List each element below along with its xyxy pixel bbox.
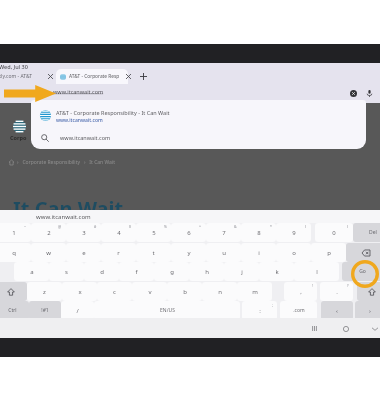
staticText: o: [292, 249, 296, 257]
button[interactable]: t: [136, 243, 171, 262]
staticText: f: [135, 268, 138, 276]
staticText: :: [259, 307, 261, 315]
button[interactable]: Back: [368, 323, 380, 334]
staticText: a: [30, 268, 34, 276]
staticText: m: [252, 288, 258, 296]
button[interactable]: :: [242, 301, 277, 320]
staticText: ;: [272, 302, 273, 307]
button[interactable]: 7: [206, 223, 241, 242]
button[interactable]: New tab: [136, 69, 150, 84]
button[interactable]: Home: [338, 323, 354, 334]
button[interactable]: .com: [280, 301, 317, 320]
button[interactable]: f: [119, 262, 154, 281]
button[interactable]: 3: [66, 223, 101, 242]
staticText: It Can Wait: [13, 195, 124, 222]
staticText: t: [152, 249, 155, 257]
staticText: 8: [257, 229, 261, 237]
button[interactable]: 9: [276, 223, 311, 242]
button[interactable]: s: [49, 262, 84, 281]
button[interactable]: a: [14, 262, 49, 281]
button[interactable]: 2: [31, 223, 66, 242]
button[interactable]: l: [294, 262, 339, 281]
staticText: /: [76, 307, 79, 315]
staticText: !: [312, 283, 313, 288]
button[interactable]: Close tab: [122, 69, 134, 84]
button[interactable]: Voice search: [363, 87, 376, 100]
button[interactable]: www.itcanwait.com: [31, 128, 366, 149]
button[interactable]: 1: [0, 223, 31, 242]
button[interactable]: 6: [171, 223, 206, 242]
staticText: Wed, Jul 30: [0, 63, 28, 70]
staticText: › Corporate Responsibility › It Can Wait: [17, 159, 115, 166]
button[interactable]: u: [206, 243, 241, 262]
button[interactable]: 0: [315, 223, 353, 242]
button[interactable]: g: [154, 262, 189, 281]
button[interactable]: Ctrl: [0, 301, 29, 320]
staticText: itly.com - AT&T: [0, 73, 33, 80]
staticText: www.itcanwait.com: [56, 117, 103, 124]
staticText: v: [148, 288, 152, 296]
button[interactable]: v: [132, 282, 167, 301]
staticText: k: [275, 268, 279, 276]
button[interactable]: y: [171, 243, 206, 262]
button[interactable]: q: [0, 243, 31, 262]
button[interactable]: Recents: [306, 323, 322, 334]
button[interactable]: .: [320, 282, 353, 301]
button[interactable]: z: [27, 282, 62, 301]
staticText: EN/US: [160, 307, 175, 314]
button[interactable]: Clear: [347, 87, 360, 100]
button[interactable]: b: [167, 282, 202, 301]
button[interactable]: AT&T - Corporate Resp: [56, 69, 128, 84]
button[interactable]: 4: [101, 223, 136, 242]
button[interactable]: x: [62, 282, 97, 301]
button[interactable]: itly.com - AT&T: [0, 69, 46, 84]
button[interactable]: AT&T - Corporate Responsibility - It Can…: [31, 104, 366, 128]
staticText: 9: [292, 229, 296, 237]
button[interactable]: ,: [284, 282, 317, 301]
staticText: @: [58, 224, 62, 229]
staticText: Go: [359, 268, 366, 275]
staticText: 7: [222, 229, 226, 237]
button[interactable]: e: [66, 243, 101, 262]
button[interactable]: Shift: [0, 282, 27, 301]
staticText: ~: [24, 224, 27, 229]
button[interactable]: d: [84, 262, 119, 281]
staticText: *: [270, 224, 272, 229]
button[interactable]: j: [224, 262, 259, 281]
staticText: !#1: [41, 307, 49, 314]
staticText: j: [241, 268, 243, 276]
staticText: AT&T - Corporate Responsibility - It Can…: [56, 109, 170, 116]
button[interactable]: 8: [241, 223, 276, 242]
button[interactable]: Close tab: [44, 69, 56, 84]
button[interactable]: www.itcanwait.com: [0, 210, 380, 223]
button[interactable]: !#1: [29, 301, 61, 320]
staticText: 1: [12, 229, 16, 237]
button[interactable]: ›: [355, 301, 380, 320]
staticText: p: [327, 249, 331, 257]
button[interactable]: EN/US: [94, 301, 240, 320]
button[interactable]: o: [276, 243, 311, 262]
staticText: 6: [187, 229, 191, 237]
button[interactable]: m: [237, 282, 272, 301]
button[interactable]: ‹: [321, 301, 353, 320]
button[interactable]: 5: [136, 223, 171, 242]
button[interactable]: h: [189, 262, 224, 281]
button[interactable]: w: [31, 243, 66, 262]
button[interactable]: p: [311, 243, 346, 262]
button[interactable]: k: [259, 262, 294, 281]
button[interactable]: n: [202, 282, 237, 301]
staticText: u: [222, 249, 226, 257]
staticText: #: [94, 224, 97, 229]
button[interactable]: c: [97, 282, 132, 301]
button[interactable]: Del: [353, 223, 380, 242]
button[interactable]: r: [101, 243, 136, 262]
staticText: y: [187, 249, 191, 257]
button[interactable]: Go: [342, 262, 380, 281]
button[interactable]: Shift: [357, 282, 380, 301]
staticText: h: [205, 268, 209, 276]
staticText: 3: [82, 229, 86, 237]
button[interactable]: /: [61, 301, 94, 320]
button[interactable]: i: [241, 243, 276, 262]
staticText: %: [164, 224, 167, 229]
button[interactable]: Backspace: [346, 243, 380, 262]
